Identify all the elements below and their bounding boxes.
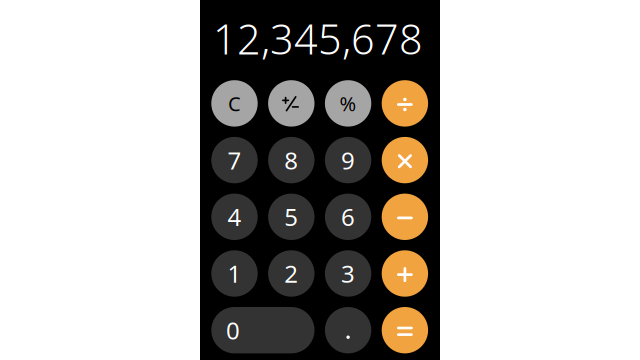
- button[interactable]: Percent: [325, 80, 371, 127]
- staticText: 5: [284, 201, 298, 233]
- button[interactable]: 9: [325, 137, 371, 183]
- button[interactable]: Minus: [382, 194, 428, 240]
- button[interactable]: Multiply: [382, 137, 428, 183]
- button[interactable]: Decimal point: [325, 307, 371, 353]
- staticText: 8: [284, 144, 298, 176]
- staticText: 1: [227, 258, 241, 289]
- staticText: 0: [226, 314, 240, 346]
- button[interactable]: 6: [325, 194, 371, 240]
- button[interactable]: Plus: [382, 250, 428, 297]
- button[interactable]: 5: [268, 194, 314, 240]
- staticText: 3: [341, 258, 355, 289]
- staticText: %: [340, 90, 357, 117]
- button[interactable]: Equals: [382, 307, 428, 353]
- button[interactable]: 3: [325, 250, 371, 297]
- button[interactable]: 7: [211, 137, 258, 183]
- staticText: 4: [227, 201, 241, 233]
- button[interactable]: 1: [211, 250, 258, 297]
- staticText: 9: [341, 144, 355, 176]
- button[interactable]: Clear: [211, 80, 258, 127]
- staticText: 12,345,678: [213, 11, 423, 66]
- staticText: 6: [341, 201, 355, 233]
- button[interactable]: 2: [268, 250, 314, 297]
- button[interactable]: 4: [211, 194, 258, 240]
- button[interactable]: Divide: [382, 80, 428, 127]
- staticText: 2: [284, 258, 298, 289]
- staticText: C: [228, 90, 241, 117]
- button[interactable]: 0: [211, 307, 314, 353]
- staticText: 7: [227, 144, 241, 176]
- button[interactable]: Plus Minus: [268, 80, 314, 127]
- button[interactable]: 8: [268, 137, 314, 183]
